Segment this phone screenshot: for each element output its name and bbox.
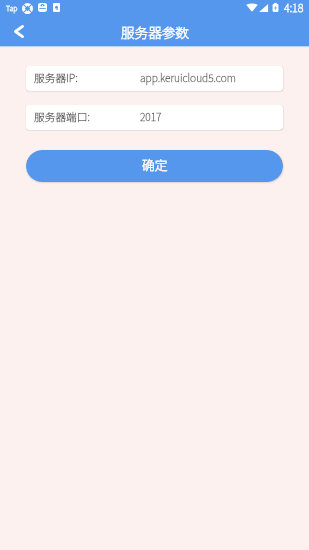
staticText: 确定 (142, 155, 168, 173)
staticText: app.keruicloud5.com (140, 70, 236, 85)
staticText: 服务器参数 (121, 22, 189, 42)
button[interactable]: Back (0, 18, 38, 46)
staticText: 服务器端口: (34, 109, 90, 124)
staticText: 服务器IP: (34, 70, 78, 85)
staticText: Tap (6, 3, 18, 13)
button[interactable]: 服务器端口: (26, 105, 283, 130)
staticText: 2017 (140, 109, 162, 124)
staticText: 4:18 (284, 0, 304, 15)
button[interactable]: 服务器IP: (26, 66, 283, 91)
button[interactable]: 确定 (26, 150, 283, 182)
